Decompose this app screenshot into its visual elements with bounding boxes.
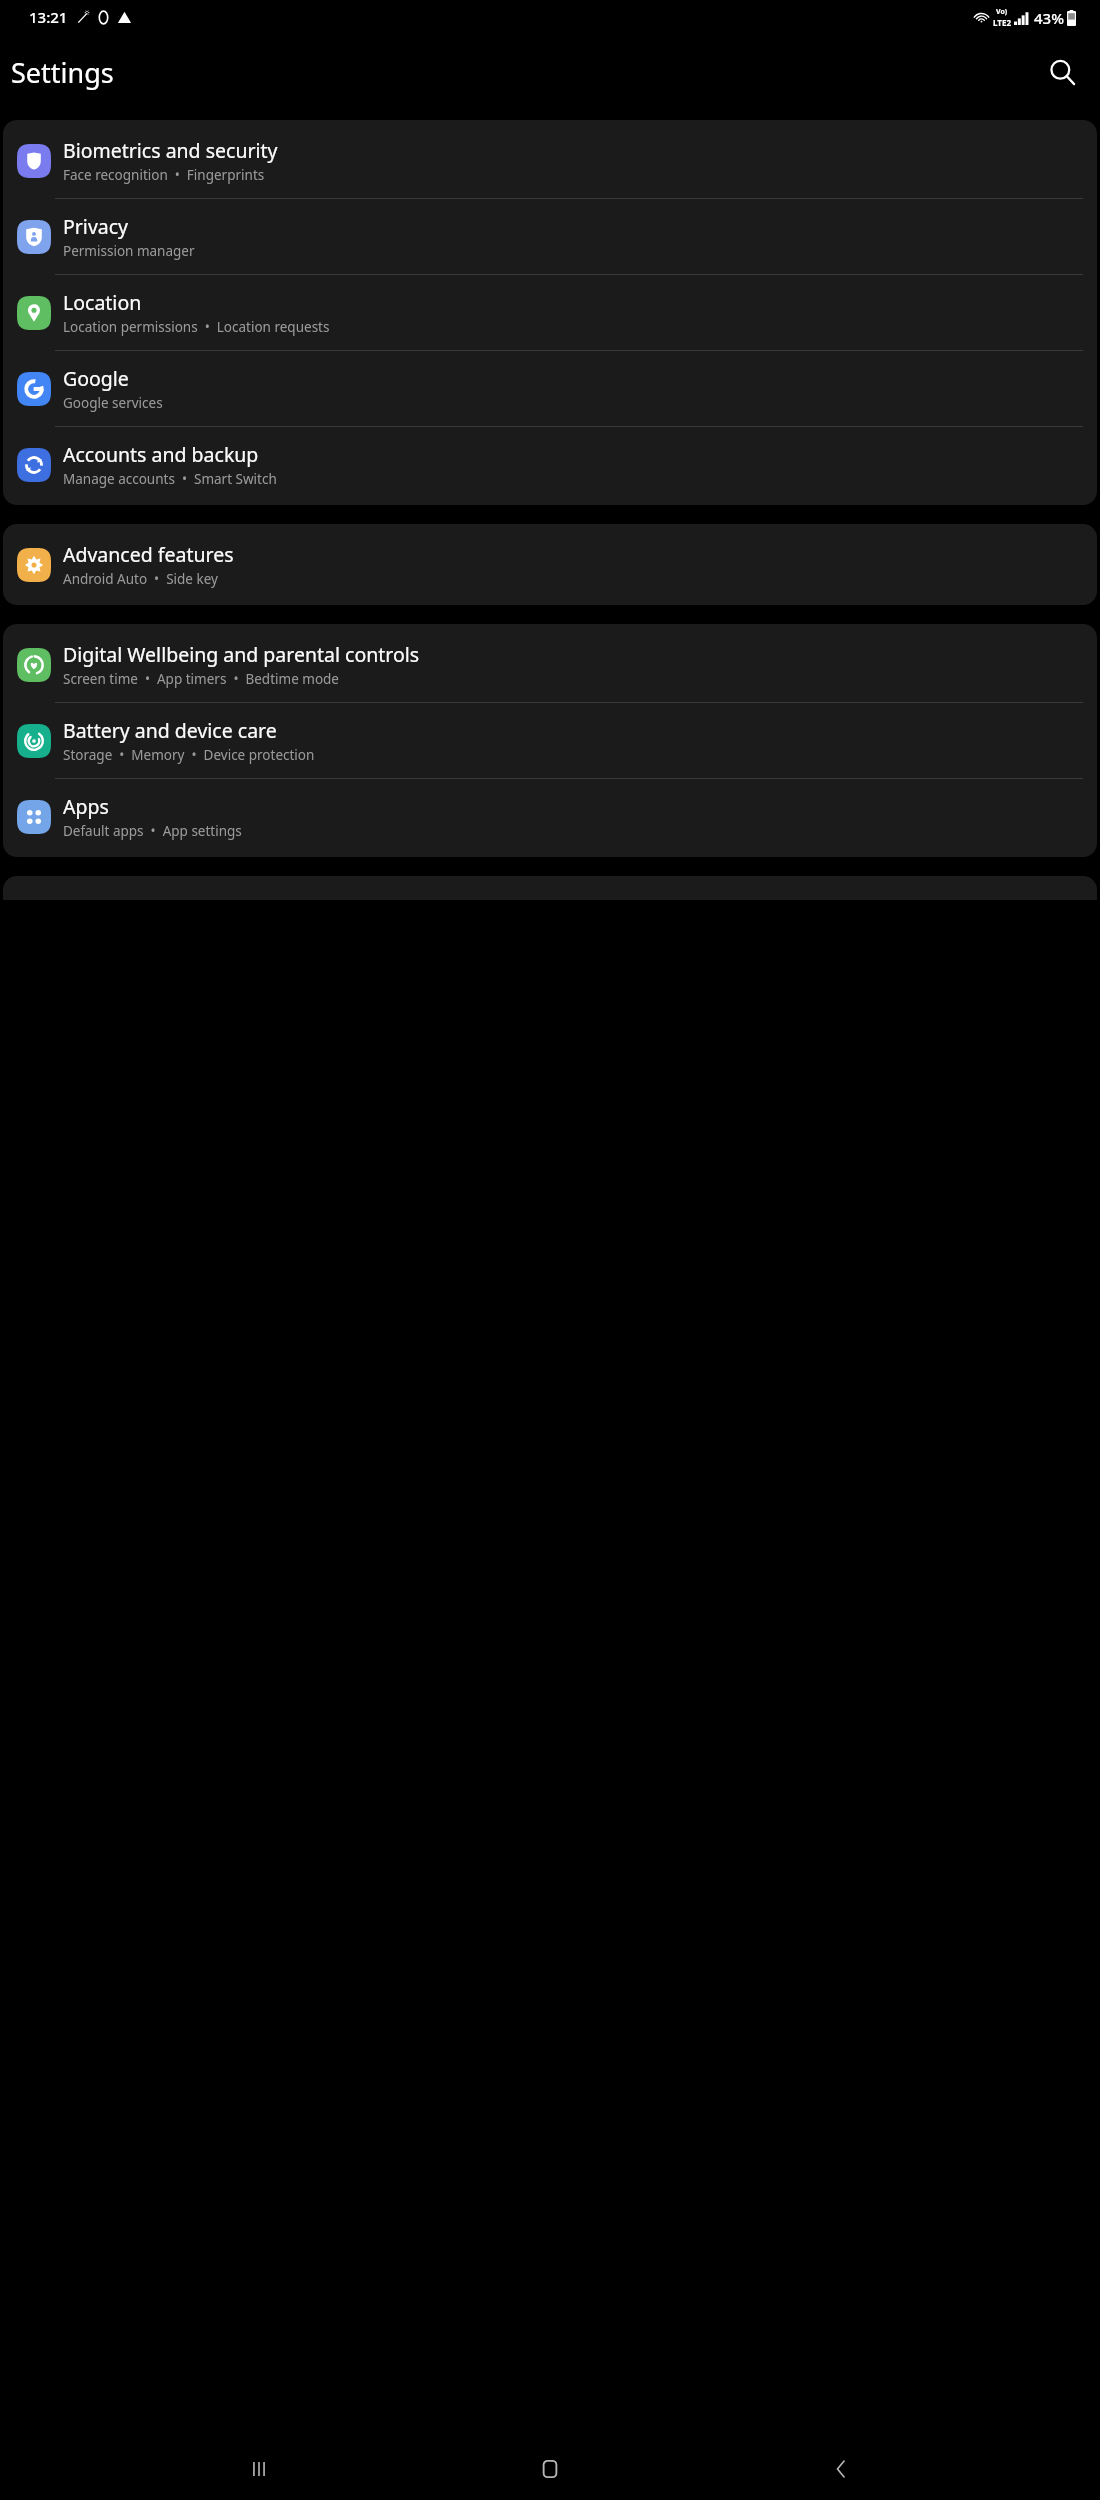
staticText: Privacy [63,213,129,240]
staticText: 43% [1034,8,1064,28]
button[interactable]: Advanced features [3,527,1097,602]
button[interactable]: Privacy [3,199,1097,274]
button[interactable]: Back [809,2438,873,2500]
staticText: Vo) [996,7,1008,17]
staticText: Location [63,289,142,316]
staticText: 13:21 [29,7,68,27]
staticText: Default apps • App settings [63,822,242,840]
staticText: Storage • Memory • Device protection [63,746,315,764]
button[interactable]: Apps [3,779,1097,854]
staticText: Location permissions • Location requests [63,318,330,336]
staticText: Settings [11,54,114,91]
staticText: Face recognition • Fingerprints [63,166,265,184]
staticText: Biometrics and security [63,137,278,164]
staticText: Android Auto • Side key [63,570,218,588]
staticText: LTE2 [993,17,1011,28]
button[interactable]: Accounts and backup [3,427,1097,502]
button[interactable]: Home [518,2438,582,2500]
staticText: Apps [63,793,109,820]
button[interactable]: Biometrics and security [3,123,1097,198]
button[interactable]: Digital Wellbeing and parental controls [3,627,1097,702]
button[interactable]: Google [3,351,1097,426]
button[interactable]: Search [1038,48,1086,96]
staticText: Google [63,365,129,392]
button[interactable]: Recents [227,2438,291,2500]
staticText: Advanced features [63,541,234,568]
staticText: Digital Wellbeing and parental controls [63,641,420,668]
button[interactable]: Battery and device care [3,703,1097,778]
button[interactable]: Location [3,275,1097,350]
staticText: Google services [63,394,163,412]
staticText: Battery and device care [63,717,277,744]
staticText: Manage accounts • Smart Switch [63,470,277,488]
staticText: Screen time • App timers • Bedtime mode [63,670,339,688]
staticText: Accounts and backup [63,441,259,468]
staticText: Permission manager [63,242,195,260]
